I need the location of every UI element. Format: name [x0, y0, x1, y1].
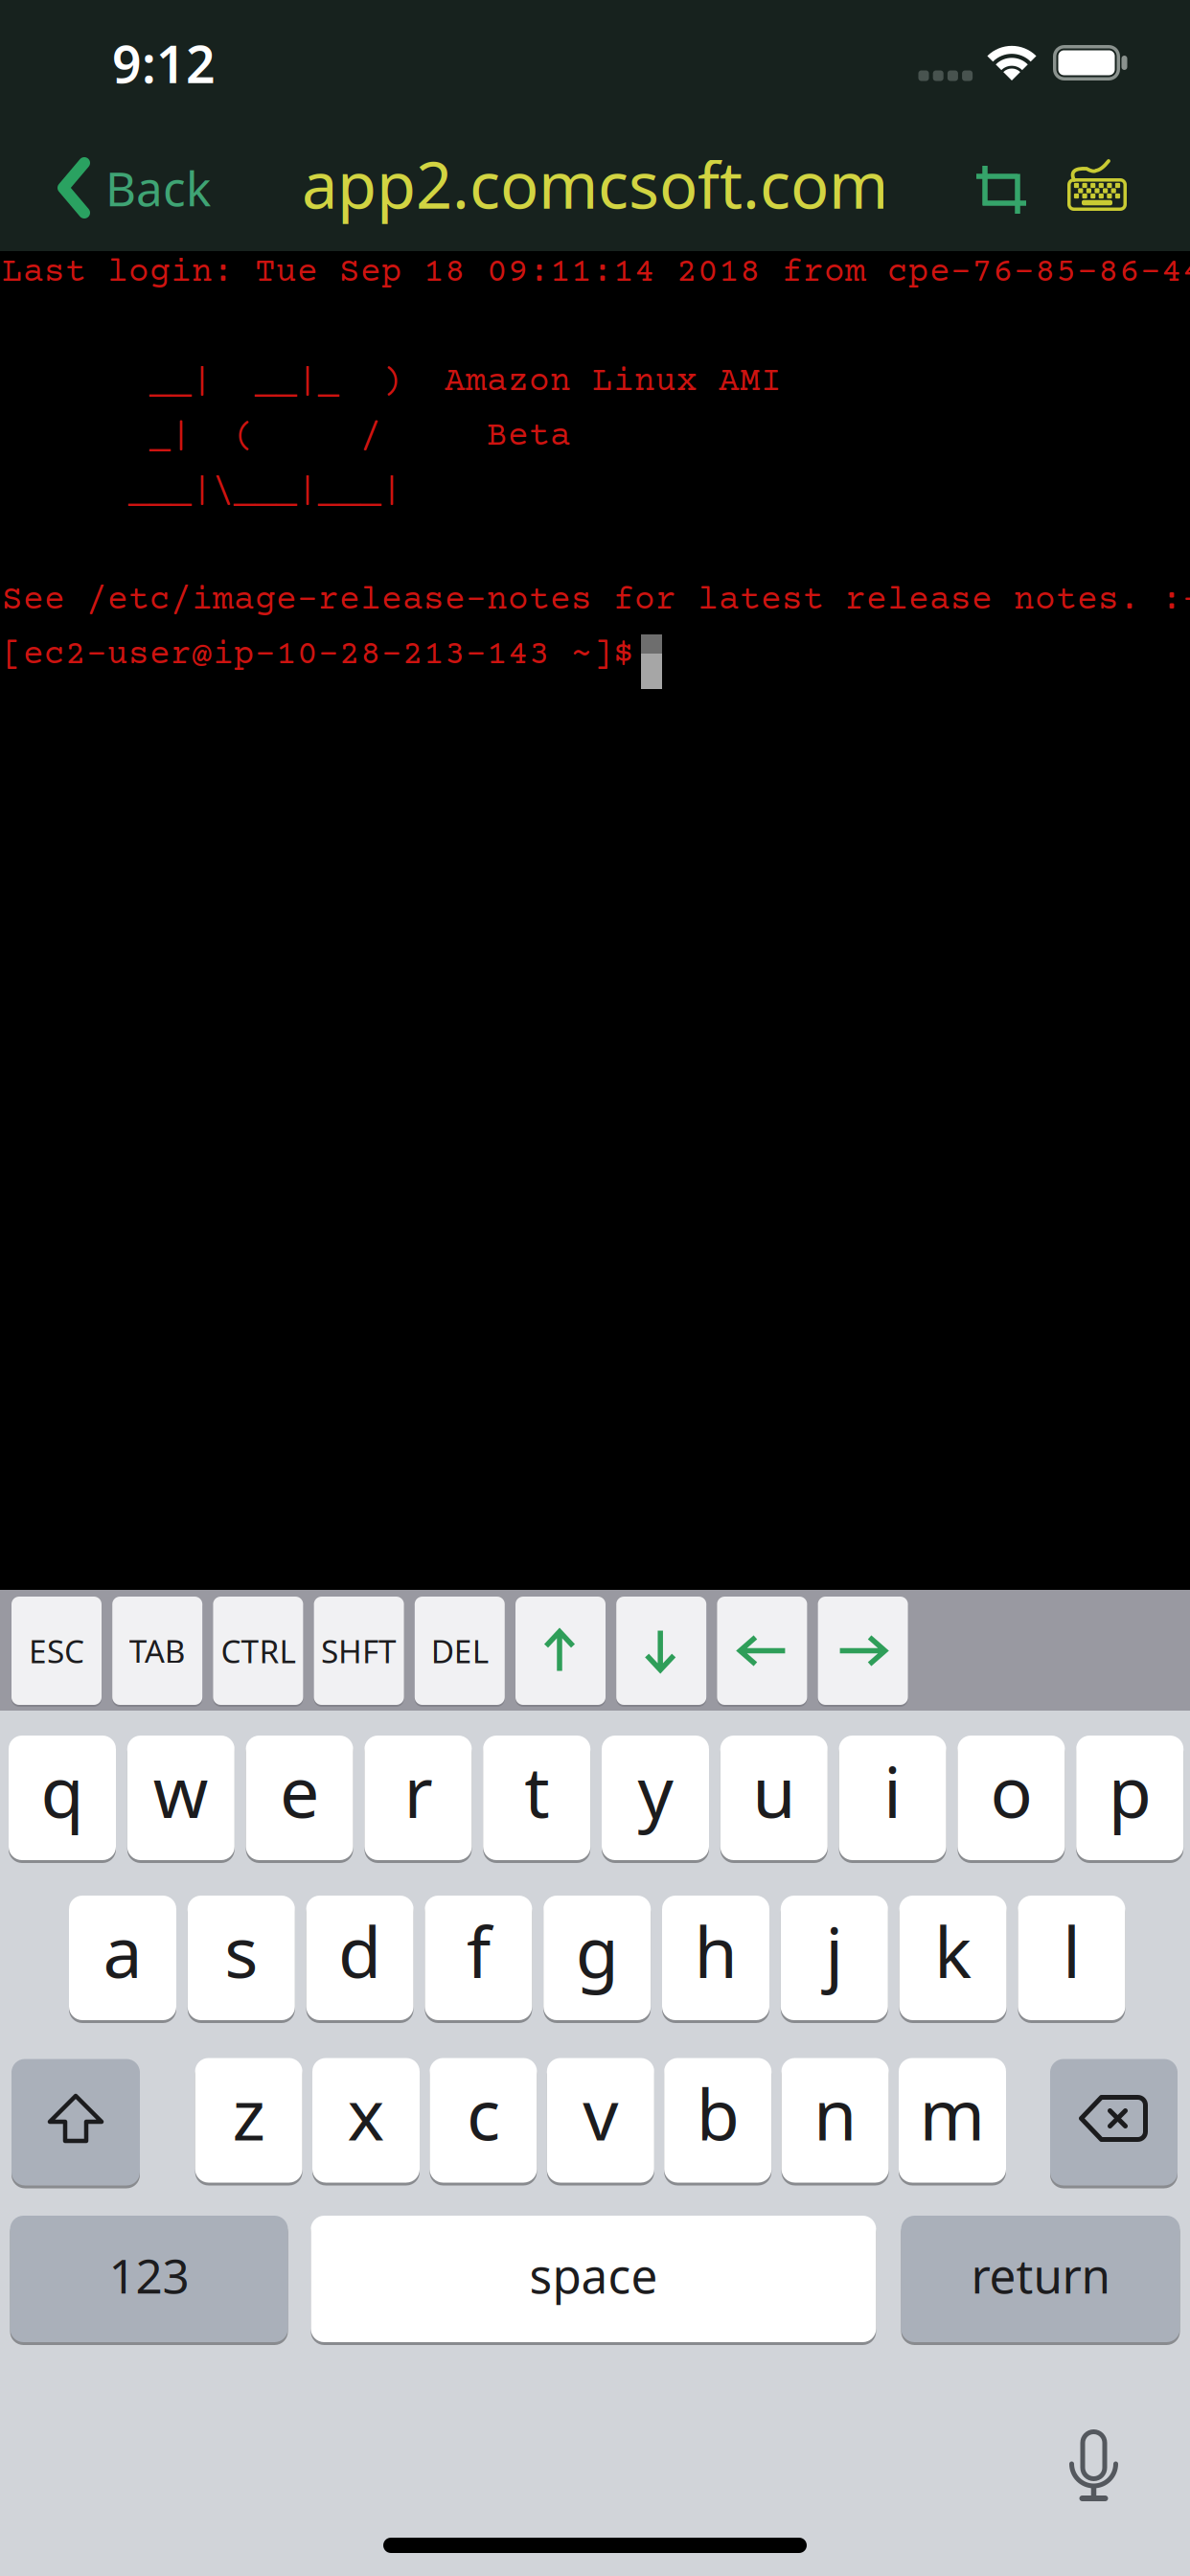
button[interactable]: n — [781, 2067, 889, 2194]
button[interactable]: z — [195, 2067, 302, 2194]
staticText: j — [825, 1904, 843, 1997]
staticText: x — [347, 2066, 385, 2160]
staticText: Back — [105, 156, 211, 219]
staticText: w — [153, 1744, 209, 1837]
staticText: 9:12 — [112, 29, 216, 97]
staticText: space — [529, 2244, 658, 2306]
staticText: p — [1108, 1744, 1151, 1837]
staticText: return — [971, 2244, 1110, 2306]
staticText: y — [638, 1744, 673, 1837]
staticText: DEL — [431, 1630, 488, 1672]
staticText: f — [467, 1904, 490, 1997]
button[interactable]: Left arrow — [717, 1597, 807, 1705]
staticText: CTRL — [221, 1630, 295, 1672]
button[interactable]: Back — [57, 154, 211, 221]
button[interactable]: CTRL — [213, 1597, 303, 1705]
button[interactable]: Keyboard — [1065, 159, 1129, 213]
button[interactable]: y — [602, 1744, 709, 1872]
staticText: i — [883, 1744, 902, 1837]
button[interactable]: SHFT — [314, 1597, 404, 1705]
staticText: app2.comcsoft.com — [302, 142, 888, 226]
staticText: h — [694, 1904, 737, 1997]
staticText: 123 — [109, 2244, 189, 2306]
button[interactable]: Crop — [974, 160, 1028, 216]
staticText: _| ( / Beta — [2, 418, 571, 456]
button[interactable]: t — [483, 1744, 590, 1872]
button[interactable]: m — [899, 2067, 1006, 2194]
staticText: a — [103, 1904, 142, 1997]
staticText: m — [919, 2066, 985, 2160]
button[interactable]: k — [899, 1904, 1007, 2032]
staticText: g — [576, 1904, 619, 1997]
button[interactable]: return — [901, 2215, 1180, 2344]
button[interactable]: j — [781, 1904, 888, 2032]
button[interactable]: w — [127, 1744, 235, 1872]
staticText: TAB — [129, 1630, 186, 1672]
staticText: t — [524, 1744, 549, 1837]
staticText: l — [1062, 1904, 1081, 1997]
staticText: ESC — [29, 1630, 84, 1672]
staticText: b — [696, 2066, 739, 2160]
staticText: d — [338, 1904, 381, 1997]
staticText: z — [232, 2066, 265, 2160]
button[interactable]: TAB — [112, 1597, 202, 1705]
button[interactable]: d — [306, 1904, 414, 2032]
staticText: ___|\___|___| — [2, 472, 402, 511]
staticText: c — [467, 2066, 500, 2160]
button[interactable]: l — [1018, 1904, 1125, 2032]
button[interactable]: r — [364, 1744, 472, 1872]
button[interactable]: Down arrow — [616, 1597, 706, 1705]
button[interactable]: v — [547, 2067, 654, 2194]
button[interactable]: ESC — [11, 1597, 102, 1705]
button[interactable]: Dictate — [1071, 2429, 1117, 2504]
staticText: See /etc/image-release-notes for latest … — [2, 582, 1190, 620]
button[interactable]: p — [1076, 1744, 1183, 1872]
staticText: u — [752, 1744, 796, 1837]
staticText: n — [814, 2066, 857, 2160]
button[interactable]: o — [958, 1744, 1065, 1872]
button[interactable]: e — [246, 1744, 353, 1872]
staticText: k — [934, 1904, 972, 1997]
button[interactable]: g — [543, 1904, 651, 2032]
button[interactable]: x — [312, 2067, 420, 2194]
button[interactable]: f — [425, 1904, 532, 2032]
staticText: v — [583, 2066, 618, 2160]
button[interactable]: u — [720, 1744, 828, 1872]
button[interactable]: Up arrow — [515, 1597, 606, 1705]
button[interactable]: i — [839, 1744, 946, 1872]
staticText: [ec2-user@ip-10-28-213-143 ~]$ — [2, 636, 634, 675]
button[interactable]: Shift — [11, 2057, 140, 2187]
staticText: o — [990, 1744, 1032, 1837]
staticText: Last login: Tue Sep 18 09:11:14 2018 fro… — [2, 254, 1190, 292]
staticText: r — [404, 1744, 433, 1837]
button[interactable]: space — [311, 2215, 876, 2344]
staticText: SHFT — [321, 1630, 397, 1672]
button[interactable]: Right arrow — [818, 1597, 908, 1705]
button[interactable]: a — [69, 1904, 176, 2032]
button[interactable]: q — [9, 1744, 116, 1872]
button[interactable]: Delete — [1050, 2057, 1178, 2187]
staticText: __| __|_ ) Amazon Linux AMI — [2, 363, 782, 402]
button[interactable]: h — [662, 1904, 769, 2032]
button[interactable]: 123 — [10, 2215, 288, 2344]
button[interactable]: s — [188, 1904, 295, 2032]
staticText: s — [224, 1904, 258, 1997]
button[interactable]: DEL — [415, 1597, 505, 1705]
staticText: e — [280, 1744, 319, 1837]
staticText: q — [41, 1744, 84, 1837]
button[interactable]: c — [430, 2067, 537, 2194]
button[interactable]: b — [664, 2067, 771, 2194]
